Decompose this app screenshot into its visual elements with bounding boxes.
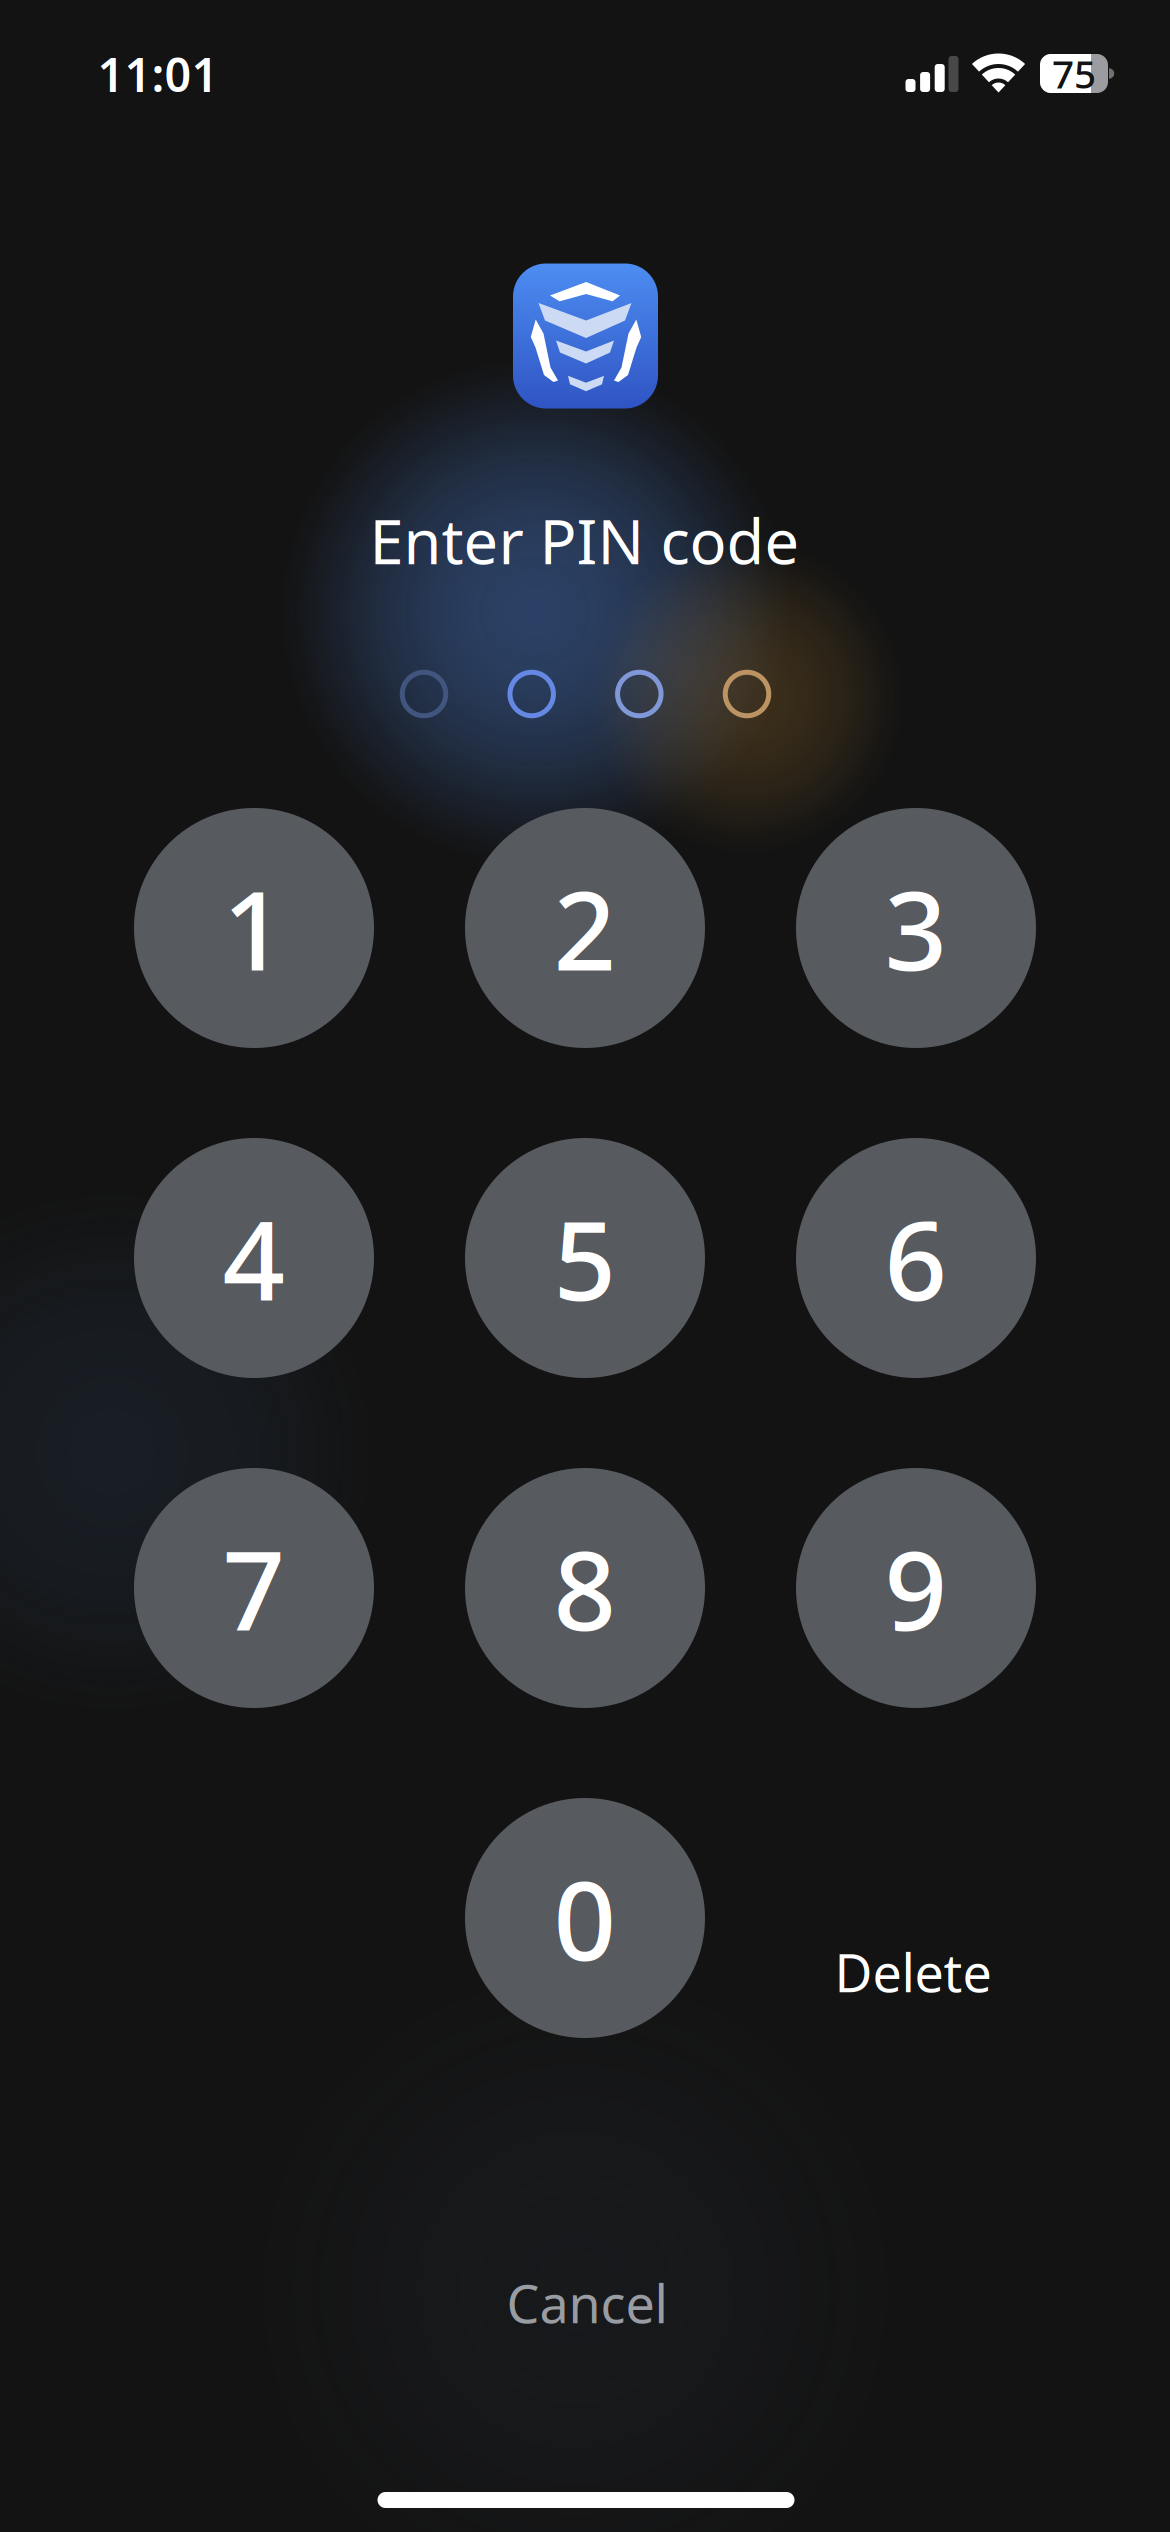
button[interactable]: 2 — [465, 808, 705, 1048]
staticText: 2 — [553, 855, 616, 1001]
button[interactable]: Cancel — [427, 2248, 747, 2358]
button[interactable]: 1 — [134, 808, 374, 1048]
staticText: 3 — [884, 855, 947, 1001]
button[interactable]: Delete — [793, 1906, 1033, 2038]
button[interactable]: 6 — [796, 1138, 1036, 1378]
button[interactable]: 7 — [134, 1468, 374, 1708]
button[interactable]: 4 — [134, 1138, 374, 1378]
staticText: 9 — [884, 1515, 947, 1661]
staticText: 11:01 — [97, 43, 218, 105]
staticText: 4 — [222, 1185, 285, 1331]
button[interactable]: 8 — [465, 1468, 705, 1708]
button[interactable]: 0 — [465, 1798, 705, 2038]
staticText: 0 — [553, 1845, 616, 1991]
staticText: 8 — [553, 1515, 616, 1661]
button[interactable]: 5 — [465, 1138, 705, 1378]
staticText: 7 — [222, 1515, 285, 1661]
staticText: 75 — [1052, 48, 1096, 99]
staticText: 5 — [553, 1185, 616, 1331]
staticText: 1 — [222, 855, 285, 1001]
staticText: Enter PIN code — [369, 500, 799, 581]
button[interactable]: 9 — [796, 1468, 1036, 1708]
staticText: 6 — [884, 1185, 947, 1331]
staticText: Delete — [834, 1937, 991, 2007]
staticText: Cancel — [506, 2268, 667, 2338]
button[interactable]: 3 — [796, 808, 1036, 1048]
